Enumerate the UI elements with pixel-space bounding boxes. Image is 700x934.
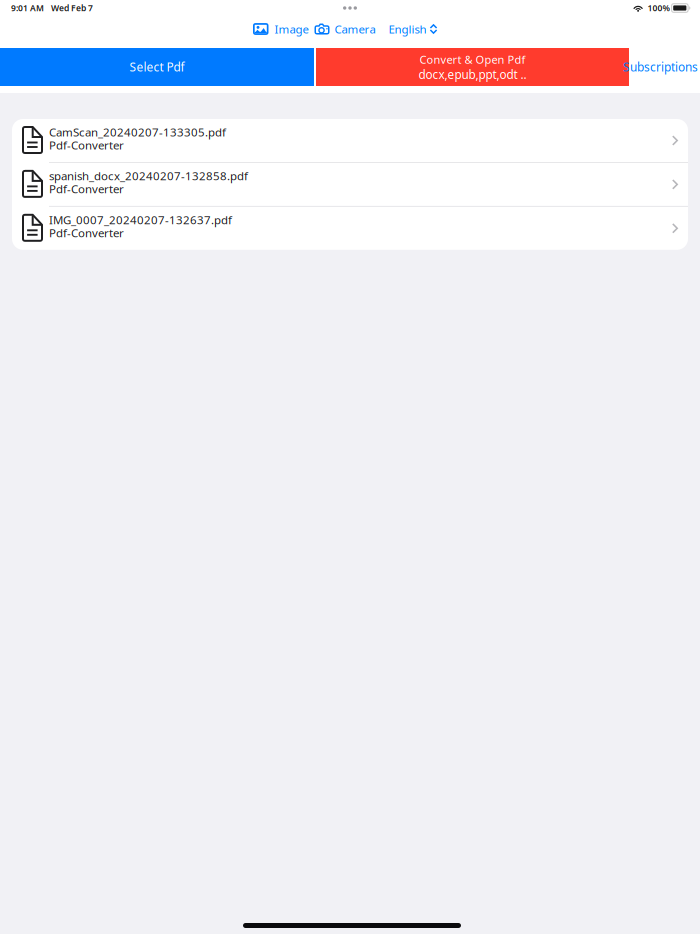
staticText: docx,epub,ppt,odt .. xyxy=(418,66,526,82)
button[interactable]: Convert & Open Pdf xyxy=(316,48,629,86)
button[interactable]: IMG_0007_20240207-132637.pdf xyxy=(12,207,688,250)
button[interactable]: CamScan_20240207-133305.pdf xyxy=(12,119,688,162)
button[interactable]: spanish_docx_20240207-132858.pdf xyxy=(12,163,688,206)
staticText: Camera xyxy=(334,21,375,37)
button[interactable]: Subscriptions xyxy=(623,48,698,86)
button[interactable]: Camera xyxy=(314,18,375,40)
staticText: Convert & Open Pdf xyxy=(419,52,525,67)
staticText: Pdf-Converter xyxy=(49,225,124,241)
staticText: Pdf-Converter xyxy=(49,137,124,153)
staticText: 9:01 AM xyxy=(11,2,44,14)
button[interactable]: English xyxy=(388,18,437,40)
staticText: Select Pdf xyxy=(129,59,184,75)
button[interactable]: Image xyxy=(253,18,308,40)
staticText: CamScan_20240207-133305.pdf xyxy=(49,124,226,140)
staticText: IMG_0007_20240207-132637.pdf xyxy=(49,212,232,228)
staticText: spanish_docx_20240207-132858.pdf xyxy=(49,168,248,184)
staticText: Image xyxy=(274,21,308,37)
staticText: English xyxy=(388,21,426,37)
staticText: 100% xyxy=(648,2,670,14)
button[interactable]: Select Pdf xyxy=(0,48,314,86)
staticText: Wed Feb 7 xyxy=(51,2,93,14)
staticText: Pdf-Converter xyxy=(49,181,124,197)
staticText: Subscriptions xyxy=(623,59,698,75)
